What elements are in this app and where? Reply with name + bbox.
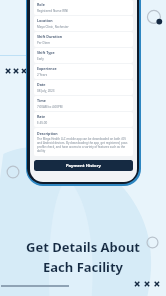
staticText: Date bbox=[37, 82, 46, 87]
staticText: Role bbox=[37, 2, 45, 7]
staticText: Registered Nurse (RN) bbox=[37, 9, 69, 13]
button[interactable]: Date bbox=[34, 80, 133, 95]
button[interactable]: Location bbox=[34, 16, 133, 31]
staticText: Description bbox=[37, 131, 58, 136]
button[interactable]: Shift Duration bbox=[34, 32, 133, 47]
button[interactable]: Role bbox=[34, 0, 133, 15]
button[interactable]: Rate bbox=[34, 112, 133, 127]
button[interactable]: Experience bbox=[34, 64, 133, 79]
staticText: Shift Duration bbox=[37, 34, 63, 39]
staticText: Experience bbox=[37, 66, 57, 71]
staticText: Payment History bbox=[66, 163, 101, 169]
staticText: Each Facility bbox=[43, 258, 123, 276]
staticText: $ 45.00 bbox=[37, 121, 48, 125]
staticText: Time bbox=[37, 98, 46, 103]
staticText: Rate bbox=[37, 114, 46, 119]
staticText: Get Details About bbox=[26, 238, 140, 256]
staticText: Mayo Clinic, Rochester bbox=[37, 25, 69, 29]
staticText: 08 July, 2023 bbox=[37, 89, 55, 93]
other: Decoration bbox=[146, 9, 164, 27]
button[interactable]: Time bbox=[34, 96, 133, 111]
staticText: Per Diem bbox=[37, 41, 50, 45]
staticText: Location bbox=[37, 18, 53, 23]
staticText: Early bbox=[37, 57, 44, 61]
staticText: 7:00AM to 4:00PM bbox=[37, 105, 63, 109]
button[interactable]: Shift Type bbox=[34, 48, 133, 63]
staticText: Shift Type bbox=[37, 50, 55, 55]
staticText: 2 Years bbox=[37, 73, 48, 77]
staticText: The Mega Health LLC mobile app can be do… bbox=[37, 137, 130, 153]
button[interactable]: Payment History bbox=[34, 160, 133, 171]
